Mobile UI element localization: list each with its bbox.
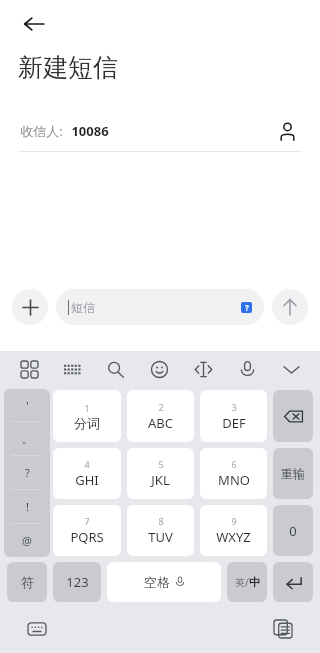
staticText: 10086 [71, 122, 109, 140]
staticText: PQRS [70, 528, 104, 546]
button[interactable]: Delete [273, 390, 313, 442]
button[interactable]: 收信人: [0, 111, 320, 151]
staticText: 123 [66, 573, 89, 591]
button[interactable]: Voice input [232, 354, 262, 384]
staticText: 。 [22, 432, 33, 446]
staticText: 3 [231, 401, 237, 413]
button[interactable]: @ [4, 524, 50, 557]
staticText: GHI [75, 471, 99, 489]
staticText: DEF [222, 414, 246, 432]
button[interactable]: 5 [127, 448, 194, 499]
button[interactable]: 1 [53, 390, 121, 442]
button[interactable]: Send [272, 289, 308, 325]
button[interactable]: 重输 [273, 448, 313, 499]
staticText: 收信人: [20, 122, 63, 140]
button[interactable]: Contacts [272, 116, 302, 146]
staticText: 6 [231, 458, 237, 470]
button[interactable]: 符 [7, 562, 47, 602]
staticText: JKL [151, 471, 170, 489]
staticText: / [245, 575, 249, 589]
staticText: 分词 [74, 415, 100, 431]
staticText: 1 [84, 402, 90, 414]
staticText: @ [22, 533, 32, 548]
button[interactable]: 空格 [107, 562, 221, 602]
button[interactable]: 9 [200, 505, 267, 556]
button[interactable]: 3 [200, 390, 267, 442]
staticText: 中 [249, 575, 260, 589]
staticText: ? [245, 302, 249, 313]
button[interactable]: 短信 [56, 289, 264, 325]
staticText: 英 [235, 576, 245, 589]
button[interactable]: Enter [273, 562, 313, 602]
staticText: 5 [158, 458, 164, 470]
staticText: ? [25, 465, 30, 480]
button[interactable]: Text editing [188, 354, 218, 384]
button[interactable]: ! [4, 490, 50, 523]
staticText: 重输 [281, 466, 305, 481]
button[interactable]: 7 [53, 505, 121, 556]
button[interactable]: 2 [127, 390, 194, 442]
button[interactable]: ? [4, 456, 50, 489]
staticText: MNO [218, 471, 250, 489]
button[interactable]: ' [4, 389, 50, 421]
button[interactable]: Search [100, 354, 130, 384]
button[interactable]: 8 [127, 505, 194, 556]
button[interactable]: Apps [14, 354, 44, 384]
staticText: 7 [84, 515, 90, 527]
staticText: 短信 [71, 300, 95, 315]
button[interactable]: Add attachment [12, 289, 48, 325]
button[interactable]: 6 [200, 448, 267, 499]
staticText: TUV [148, 528, 173, 546]
button[interactable]: Hide keyboard [276, 354, 306, 384]
staticText: ' [26, 398, 29, 413]
staticText: WXYZ [216, 528, 251, 546]
staticText: 8 [158, 515, 164, 527]
button[interactable]: 英 [227, 562, 267, 602]
button[interactable]: Clipboard [268, 614, 298, 644]
staticText: ! [26, 499, 29, 514]
staticText: 4 [84, 458, 90, 470]
staticText: 新建短信 [18, 52, 118, 83]
staticText: 2 [158, 401, 164, 413]
staticText: 符 [21, 574, 34, 590]
staticText: 空格 [144, 574, 170, 590]
button[interactable]: Emoji [144, 354, 174, 384]
staticText: ABC [148, 414, 173, 432]
button[interactable]: Keyboard layout [57, 354, 87, 384]
staticText: 9 [231, 515, 237, 527]
button[interactable]: 0 [273, 505, 313, 556]
button[interactable]: 123 [53, 562, 101, 602]
button[interactable]: Switch keyboard [22, 614, 52, 644]
button[interactable]: 4 [53, 448, 121, 499]
button[interactable]: Back [12, 2, 56, 46]
staticText: 0 [289, 522, 297, 540]
